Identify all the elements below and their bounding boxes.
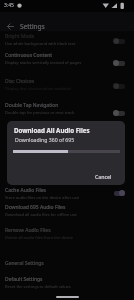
button[interactable]: Bright Mode [0, 31, 134, 47]
staticText: Downloading 360 of 695 [15, 136, 75, 143]
button[interactable]: Remove Audio Files [0, 225, 134, 241]
button[interactable] [7, 23, 14, 30]
staticText: Disc Choices [5, 78, 35, 85]
button[interactable] [113, 60, 125, 66]
staticText: Double Tap Navigation [5, 102, 59, 109]
button[interactable] [113, 38, 125, 44]
staticText: Double tap for previous or next track [5, 110, 75, 115]
button[interactable]: Default Settings [0, 274, 134, 290]
staticText: Cache Audio Files [5, 187, 46, 194]
button[interactable]: Download 695 Audio Files [0, 202, 134, 218]
button[interactable]: Double Tap Navigation [0, 100, 134, 116]
staticText: Download all audio files for offline use [5, 212, 77, 217]
staticText: Settings [20, 22, 45, 31]
button[interactable]: Cancel [85, 170, 121, 183]
staticText: General Settings [5, 260, 44, 267]
staticText: Reset the settings to default values [5, 284, 71, 289]
staticText: Use white background with black text [5, 41, 76, 46]
staticText: Store audio files on the device after us… [5, 195, 79, 200]
button[interactable] [113, 190, 125, 196]
staticText: Default Settings [5, 276, 43, 283]
staticText: Bright Mode [5, 33, 35, 40]
staticText: 3:45 [4, 2, 14, 9]
staticText: Cancel [95, 173, 112, 180]
staticText: Display disc choices when available [5, 86, 71, 91]
button[interactable] [113, 83, 125, 89]
staticText: Continuous Content [5, 52, 53, 59]
button[interactable]: Disc Choices [0, 76, 134, 92]
staticText: Delete all audio files from the device [5, 235, 74, 240]
staticText: Display stacks vertically instead of pag… [5, 60, 82, 65]
staticText: Download All Audio Files [14, 126, 90, 134]
staticText: Download 695 Audio Files [5, 204, 66, 211]
button[interactable] [113, 110, 125, 116]
button[interactable]: Continuous Content [0, 50, 134, 66]
staticText: Remove Audio Files [5, 227, 51, 234]
button[interactable]: Cache Audio Files [0, 185, 134, 201]
